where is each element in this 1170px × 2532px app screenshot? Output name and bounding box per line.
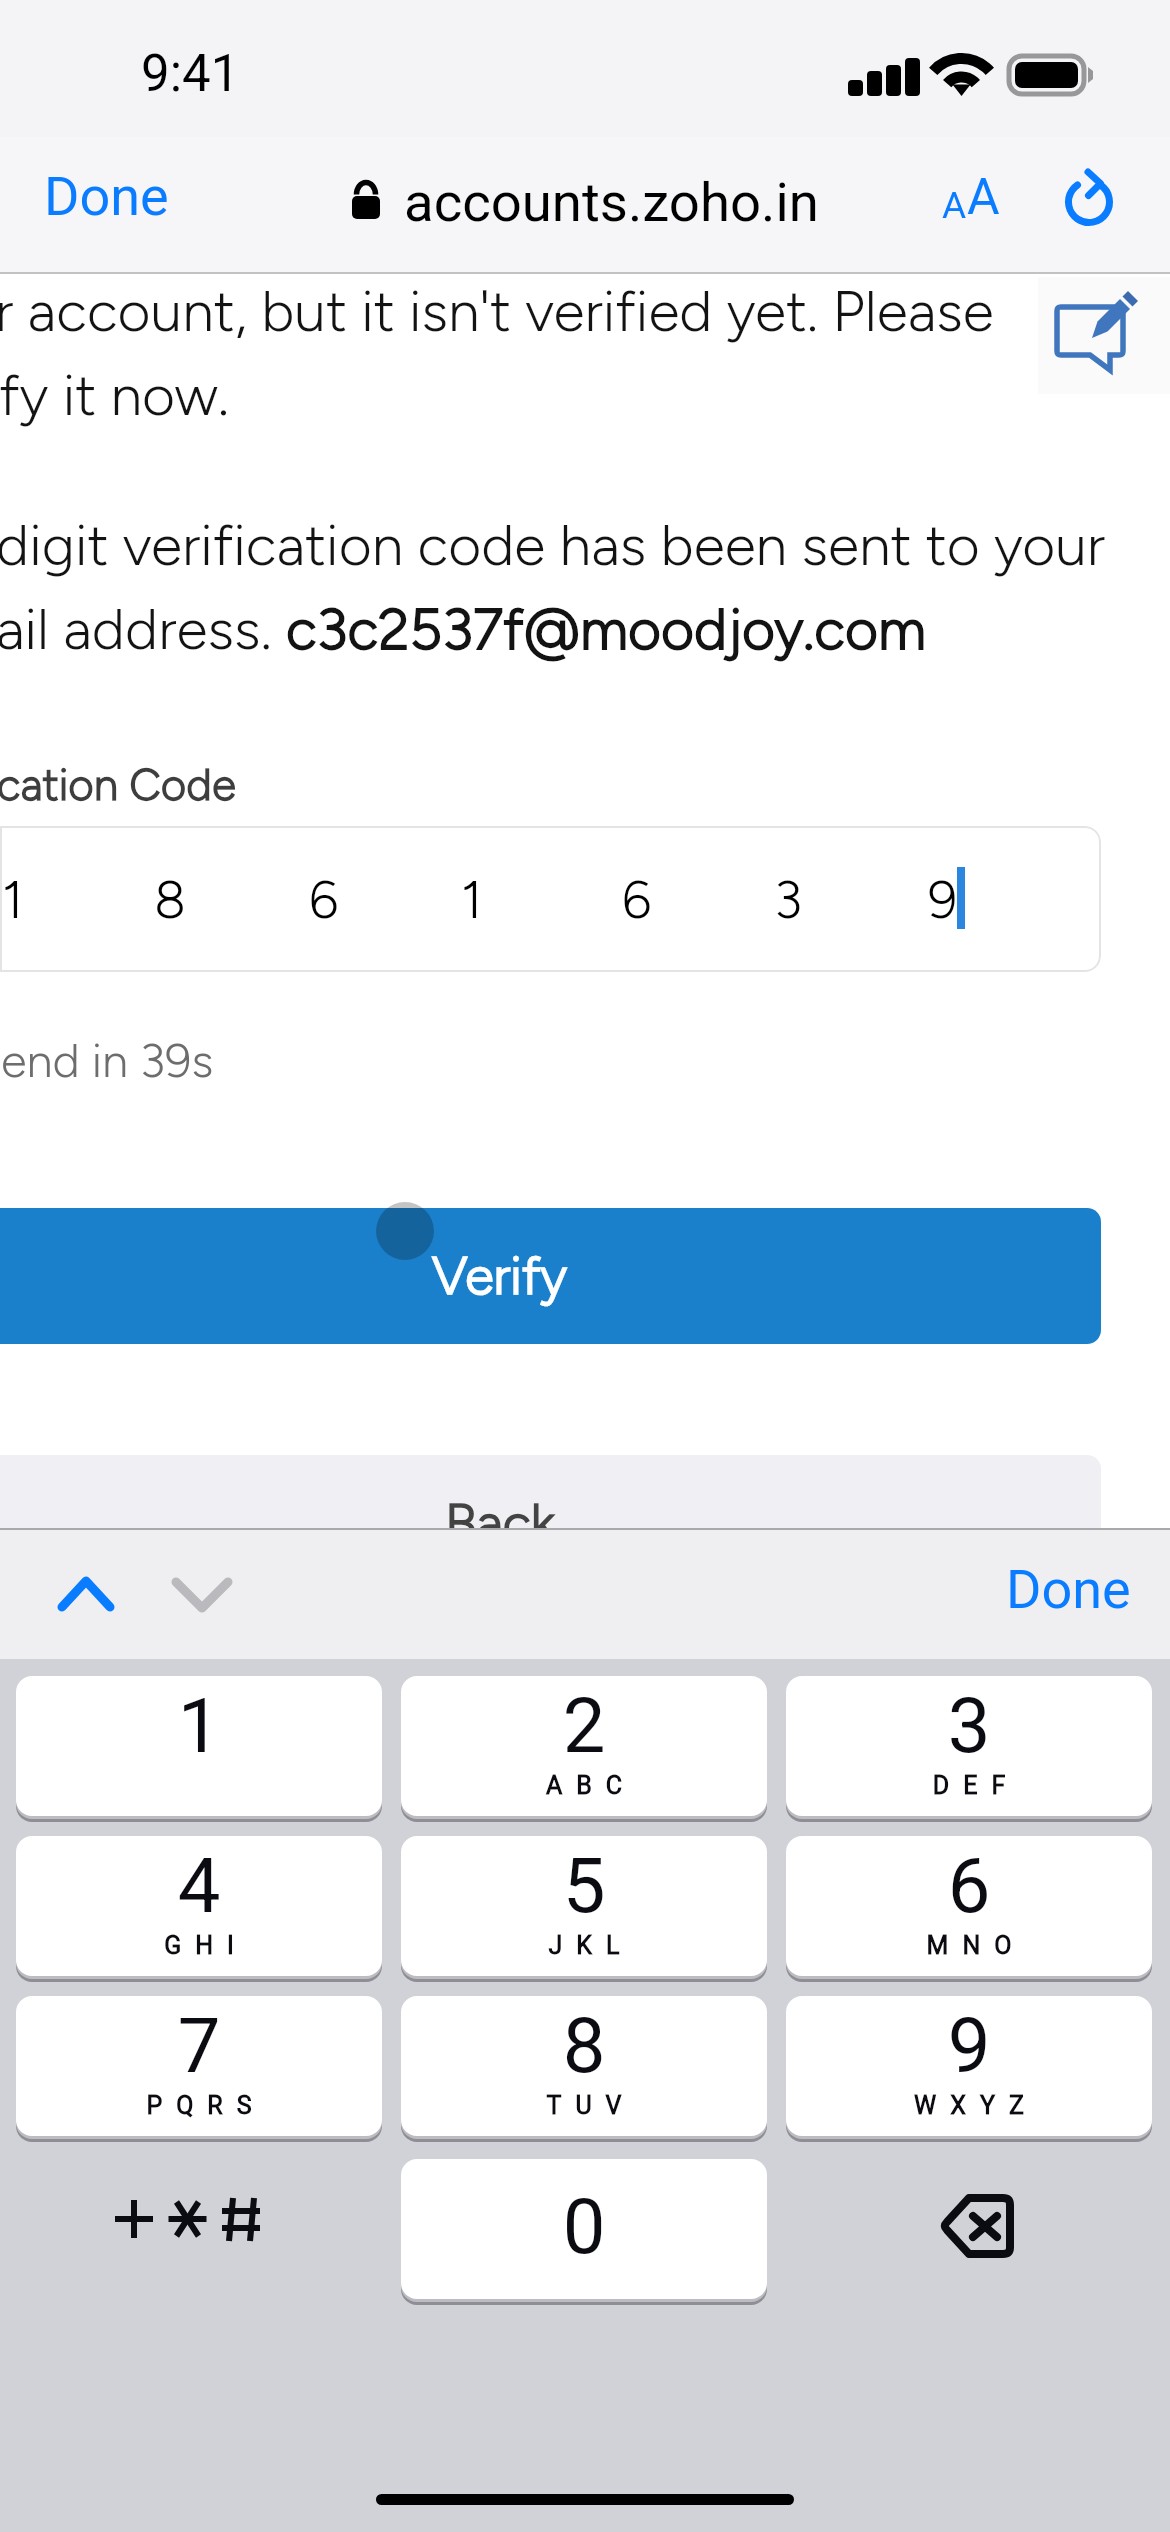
staticText: 3 (786, 1681, 1152, 1770)
staticText: JKL (408, 1931, 767, 1960)
staticText: Verify (432, 1245, 567, 1307)
staticText: c3c2537f@moodjoy.com (286, 595, 927, 663)
staticText: A (942, 184, 967, 227)
button[interactable] (0, 826, 1101, 972)
staticText: DEF (793, 1771, 1152, 1800)
staticText: 8 (154, 869, 186, 931)
staticText: 9 (786, 2001, 1152, 2090)
staticText: 9 (928, 869, 958, 931)
staticText: 8 (401, 2001, 767, 2090)
button[interactable]: 9 (786, 1996, 1152, 2136)
staticText: 6 (786, 1841, 1152, 1930)
staticText: 1 (2, 869, 24, 931)
button[interactable]: 5 (401, 1836, 767, 1976)
staticText: r account, but it isn't verified yet. Pl… (0, 277, 994, 345)
button[interactable]: Feedback (1038, 277, 1170, 394)
button[interactable]: Next field (146, 1528, 254, 1616)
staticText: 3 (774, 869, 803, 931)
staticText: MNO (793, 1931, 1152, 1960)
staticText: 9:41 (141, 44, 240, 104)
staticText: Back (445, 1492, 555, 1554)
staticText: ABC (408, 1771, 767, 1800)
button[interactable]: 6 (786, 1836, 1152, 1976)
button[interactable]: 0 (401, 2159, 767, 2299)
button[interactable]: 1 (16, 1676, 382, 1816)
button[interactable]: Text size (922, 139, 1020, 249)
staticText: fy it now. (0, 361, 229, 429)
staticText: GHI (23, 1931, 382, 1960)
staticText: 0 (401, 2182, 767, 2271)
button[interactable]: Delete (786, 2159, 1152, 2299)
staticText: digit verification code has been sent to… (0, 511, 1106, 579)
staticText: end in 39s (1, 1032, 214, 1088)
button[interactable]: 4 (16, 1836, 382, 1976)
staticText: 5 (401, 1841, 767, 1930)
staticText: accounts.zoho.in (404, 170, 819, 234)
staticText: 6 (309, 869, 339, 931)
staticText: TUV (408, 2091, 767, 2120)
staticText: A (967, 168, 1000, 227)
button[interactable]: 2 (401, 1676, 767, 1816)
button[interactable]: Verify (0, 1208, 1101, 1344)
staticText: WXYZ (793, 2091, 1152, 2120)
staticText: ail address. (0, 595, 286, 663)
staticText: 4 (16, 1841, 382, 1930)
button[interactable]: 7 (16, 1996, 382, 2136)
button[interactable]: Back (0, 1455, 1101, 1591)
staticText: Done (1006, 1558, 1131, 1621)
staticText: 1 (16, 1681, 382, 1770)
button[interactable]: 8 (401, 1996, 767, 2136)
staticText: 2 (401, 1681, 767, 1770)
staticText: 7 (16, 2001, 382, 2090)
staticText: 1 (461, 869, 483, 931)
button[interactable]: Done (992, 1542, 1145, 1637)
button[interactable]: Reload (1043, 157, 1135, 249)
staticText: PQRS (23, 2091, 382, 2120)
button[interactable]: Symbols (16, 2159, 382, 2299)
staticText: ication Code (0, 758, 236, 811)
button[interactable]: Previous field (32, 1528, 140, 1616)
staticText: Done (44, 165, 169, 228)
button[interactable]: 3 (786, 1676, 1152, 1816)
button[interactable]: Done (26, 147, 187, 246)
staticText: 6 (622, 869, 652, 931)
